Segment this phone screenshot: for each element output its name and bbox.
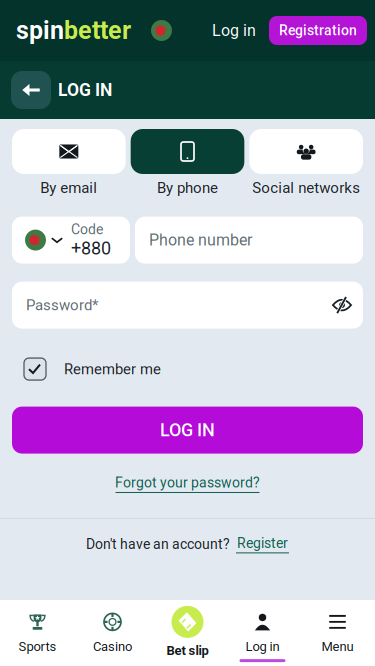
button[interactable]: Back [11, 71, 51, 109]
staticText: Phone number [149, 231, 252, 249]
staticText: Remember me [64, 360, 161, 378]
staticText: Registration [279, 22, 357, 39]
button[interactable]: Registration [269, 16, 367, 45]
button[interactable]: Sports [0, 610, 75, 662]
staticText: Forgot your password? [115, 475, 260, 491]
staticText: LOG IN [58, 80, 112, 100]
staticText: spin [16, 16, 64, 45]
staticText: Password* [26, 296, 98, 314]
button[interactable]: Bet slip [150, 606, 225, 666]
staticText: By email [40, 179, 97, 197]
button[interactable]: Phone number [135, 217, 363, 264]
staticText: better [64, 16, 131, 45]
button[interactable]: Code [12, 217, 130, 264]
button[interactable]: By phone [131, 129, 244, 197]
button[interactable]: Password* [12, 282, 363, 329]
button[interactable]: Casino [75, 610, 150, 662]
staticText: Log in [245, 639, 279, 654]
staticText: Don't have an account? [86, 536, 230, 552]
staticText: Social networks [252, 179, 360, 197]
staticText: Sports [18, 639, 56, 654]
button[interactable]: Country [151, 20, 172, 41]
button[interactable]: Log in [225, 610, 300, 662]
staticText: Code [71, 221, 103, 238]
staticText: Casino [93, 639, 132, 654]
staticText: By phone [157, 179, 218, 197]
staticText: Register [237, 535, 288, 551]
button[interactable]: Social networks [249, 129, 363, 197]
staticText: LOG IN [160, 419, 215, 441]
button[interactable]: Forgot your password? [115, 466, 260, 502]
staticText: +880 [71, 238, 111, 259]
button[interactable]: Menu [300, 610, 375, 662]
button[interactable]: By email [12, 129, 126, 197]
button[interactable]: Register [236, 535, 289, 553]
button[interactable]: Remember me [0, 348, 375, 391]
button[interactable]: LOG IN [12, 407, 363, 454]
staticText: Menu [321, 639, 353, 654]
button[interactable]: Log in [205, 12, 267, 49]
staticText: Bet slip [166, 643, 208, 658]
staticText: Log in [212, 21, 256, 40]
